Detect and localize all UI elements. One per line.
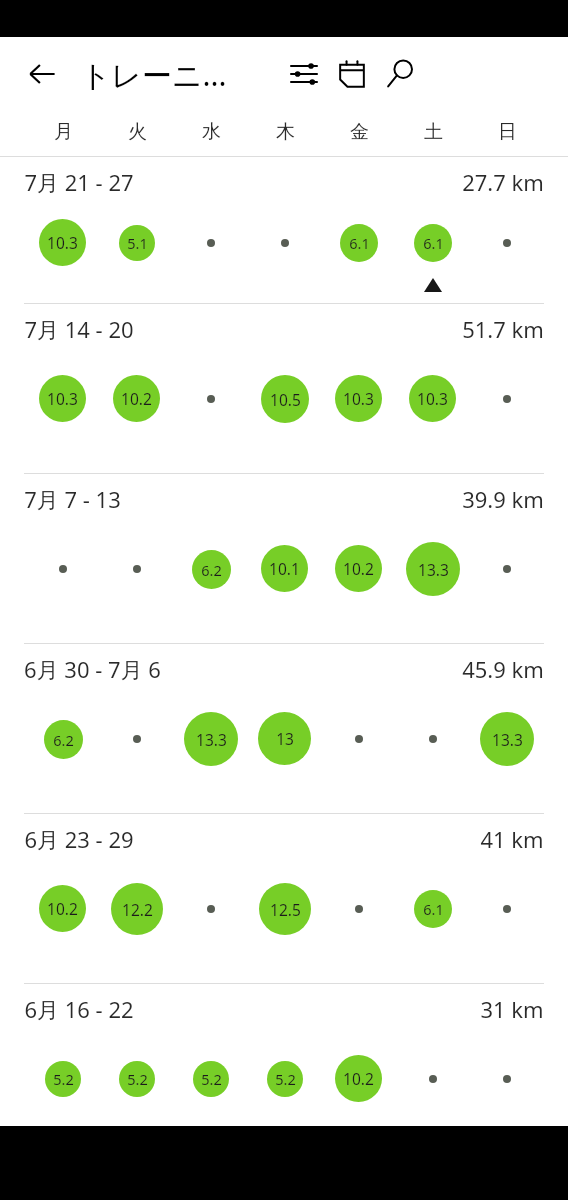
staticText: 5.1 [127, 233, 148, 253]
button[interactable]: Back [18, 50, 66, 98]
button[interactable]: 6.2 [44, 720, 83, 759]
staticText: 5.2 [201, 1069, 222, 1089]
button[interactable]: 10.2 [335, 1055, 382, 1102]
button[interactable]: 6.1 [340, 224, 378, 262]
button[interactable]: Search [376, 50, 424, 98]
button[interactable]: 13 [258, 712, 311, 765]
staticText: 10.3 [417, 388, 448, 409]
staticText: 月 [54, 120, 73, 144]
staticText: 金 [350, 120, 369, 144]
staticText: 日 [498, 120, 517, 144]
staticText: 6.1 [423, 899, 444, 919]
staticText: 27.7 km [462, 167, 544, 197]
button[interactable]: 7月 14 - 20 [0, 304, 568, 473]
staticText: 6月 16 - 22 [24, 994, 134, 1024]
button[interactable]: 5.1 [119, 225, 155, 261]
button[interactable]: 10.3 [409, 375, 456, 422]
button[interactable]: 5.2 [45, 1061, 81, 1097]
button[interactable]: 6月 30 - 7月 6 [0, 644, 568, 813]
staticText: 31 km [480, 994, 544, 1024]
staticText: 土 [424, 120, 443, 144]
button[interactable]: 6.2 [192, 550, 231, 589]
staticText: トレーニ... [80, 54, 227, 95]
button[interactable]: 5.2 [267, 1061, 303, 1097]
button[interactable]: 12.2 [111, 883, 163, 935]
staticText: 10.3 [47, 388, 78, 409]
staticText: 6.2 [201, 560, 222, 580]
staticText: 39.9 km [462, 484, 544, 514]
staticText: 10.3 [343, 388, 374, 409]
button[interactable]: 10.3 [335, 375, 382, 422]
staticText: 45.9 km [462, 654, 544, 684]
button[interactable]: 6.1 [414, 224, 452, 262]
button[interactable]: 5.2 [193, 1061, 229, 1097]
staticText: 10.1 [269, 558, 300, 579]
staticText: 10.2 [47, 898, 78, 919]
staticText: 水 [202, 120, 221, 144]
staticText: 10.2 [121, 388, 152, 409]
button[interactable]: 10.2 [113, 375, 160, 422]
staticText: 火 [128, 120, 147, 144]
button[interactable]: 12.5 [259, 883, 311, 935]
staticText: 7月 7 - 13 [24, 484, 121, 514]
button[interactable]: Calendar [328, 50, 376, 98]
staticText: 12.2 [122, 899, 153, 920]
staticText: 5.2 [275, 1069, 296, 1089]
staticText: 5.2 [127, 1069, 148, 1089]
button[interactable]: 5.2 [119, 1061, 155, 1097]
staticText: 7月 21 - 27 [24, 167, 134, 197]
staticText: 6月 30 - 7月 6 [24, 654, 161, 684]
staticText: 6.1 [349, 233, 370, 253]
button[interactable]: 10.3 [39, 375, 86, 422]
button[interactable]: 10.5 [261, 375, 309, 423]
staticText: 5.2 [53, 1069, 74, 1089]
button[interactable]: 10.2 [39, 885, 86, 932]
staticText: 6.1 [423, 233, 444, 253]
staticText: 13.3 [418, 559, 449, 580]
button[interactable]: 10.3 [39, 219, 86, 266]
button[interactable]: 7月 7 - 13 [0, 474, 568, 643]
button[interactable]: 6.1 [414, 890, 452, 928]
button[interactable]: 13.3 [406, 542, 460, 596]
button[interactable]: 6月 23 - 29 [0, 814, 568, 983]
staticText: 10.3 [47, 232, 78, 253]
button[interactable]: 10.2 [335, 545, 382, 592]
button[interactable]: 6月 16 - 22 [0, 984, 568, 1126]
staticText: 10.2 [343, 558, 374, 579]
staticText: 41 km [480, 824, 544, 854]
staticText: 10.5 [270, 389, 301, 410]
button[interactable]: 13.3 [480, 712, 534, 766]
staticText: 木 [276, 120, 295, 144]
staticText: 10.2 [343, 1068, 374, 1089]
button[interactable]: 13.3 [184, 712, 238, 766]
staticText: 51.7 km [462, 314, 544, 344]
button[interactable]: 7月 21 - 27 [0, 157, 568, 303]
staticText: 12.5 [270, 899, 301, 920]
button[interactable]: Filters [280, 50, 328, 98]
staticText: 7月 14 - 20 [24, 314, 134, 344]
staticText: 13.3 [196, 729, 227, 750]
button[interactable]: 10.1 [261, 545, 308, 592]
staticText: 13 [276, 728, 294, 749]
staticText: 6月 23 - 29 [24, 824, 134, 854]
staticText: 13.3 [492, 729, 523, 750]
staticText: 6.2 [53, 730, 74, 750]
